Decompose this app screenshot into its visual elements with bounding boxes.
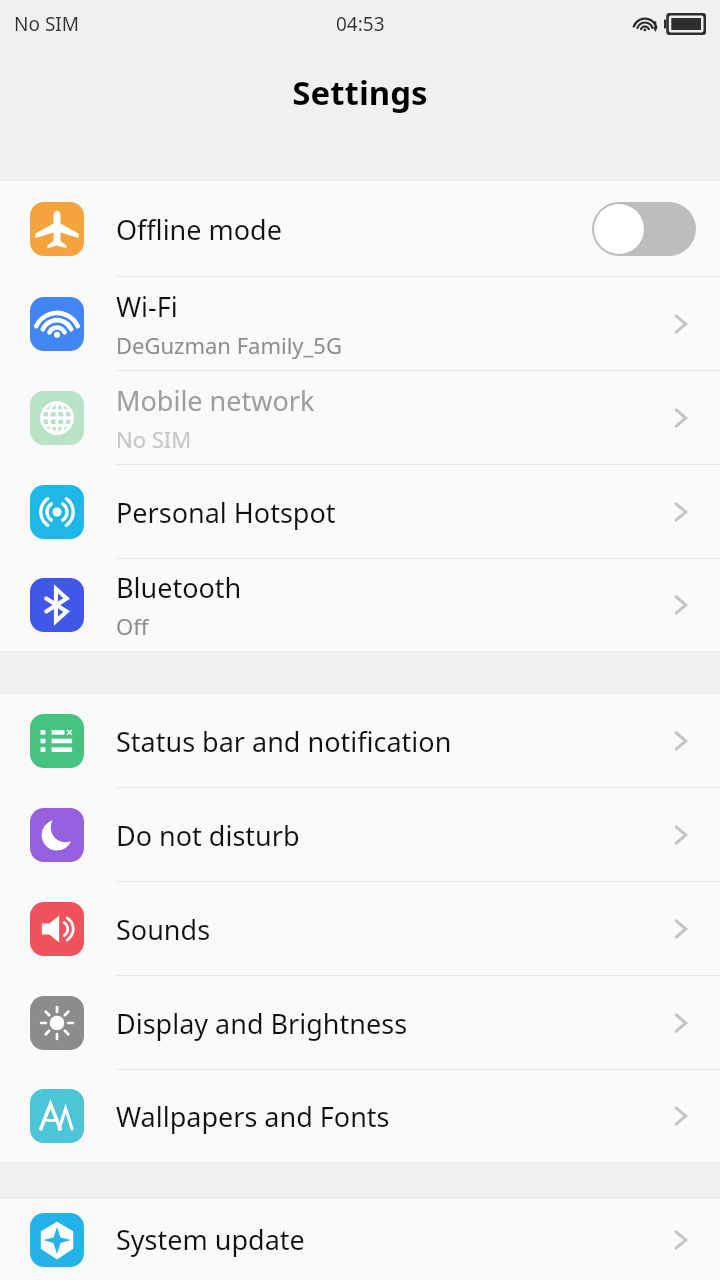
- staticText: Bluetooth: [116, 569, 242, 606]
- staticText: DeGuzman Family_5G: [116, 330, 342, 360]
- button[interactable]: Mobile network: [0, 371, 720, 465]
- button[interactable]: Personal Hotspot: [0, 465, 720, 559]
- staticText: System update: [116, 1221, 305, 1258]
- staticText: Settings: [292, 70, 428, 115]
- staticText: Mobile network: [116, 382, 315, 419]
- staticText: 04:53: [336, 11, 385, 37]
- staticText: Wi-Fi: [116, 288, 178, 325]
- button[interactable]: Wallpapers and Fonts: [0, 1070, 720, 1162]
- staticText: No SIM: [116, 424, 192, 454]
- button[interactable]: Sounds: [0, 882, 720, 976]
- button[interactable]: Status bar and notification: [0, 694, 720, 788]
- staticText: Status bar and notification: [116, 723, 452, 760]
- button[interactable]: Bluetooth: [0, 559, 720, 651]
- button[interactable]: Offline mode toggle: [592, 202, 696, 256]
- button[interactable]: System update: [0, 1199, 720, 1280]
- staticText: Offline mode: [116, 211, 282, 248]
- staticText: Display and Brightness: [116, 1005, 408, 1042]
- button[interactable]: Do not disturb: [0, 788, 720, 882]
- staticText: Wallpapers and Fonts: [116, 1098, 390, 1135]
- staticText: Personal Hotspot: [116, 494, 336, 531]
- staticText: Sounds: [116, 911, 211, 948]
- staticText: Do not disturb: [116, 817, 300, 854]
- staticText: Off: [116, 611, 149, 641]
- button[interactable]: Offline mode: [0, 181, 720, 277]
- staticText: No SIM: [14, 11, 79, 37]
- button[interactable]: Display and Brightness: [0, 976, 720, 1070]
- button[interactable]: Wi-Fi: [0, 277, 720, 371]
